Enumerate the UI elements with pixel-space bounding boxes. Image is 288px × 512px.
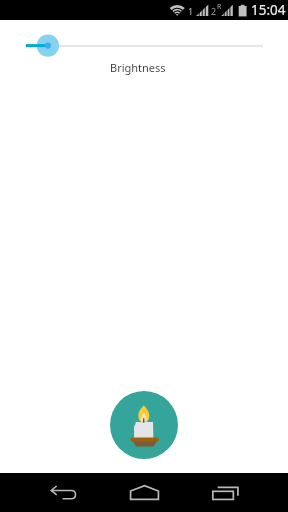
staticText: R [217,2,222,12]
button[interactable]: Home [108,473,180,512]
staticText: 15:04 [251,1,286,19]
button[interactable]: Back [28,473,100,512]
button[interactable]: Candle [110,391,178,459]
staticText: 2 [211,5,217,17]
staticText: 1 [188,5,194,17]
button[interactable]: Recent apps [189,473,261,512]
button[interactable]: Brightness slider [0,20,288,56]
staticText: Brightness [110,60,166,75]
